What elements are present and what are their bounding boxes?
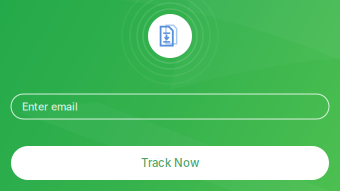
staticText: Track Now — [141, 156, 199, 170]
button[interactable]: Track Now — [11, 146, 329, 180]
staticText: Enter email — [22, 100, 78, 113]
button[interactable]: Enter email — [11, 94, 329, 119]
